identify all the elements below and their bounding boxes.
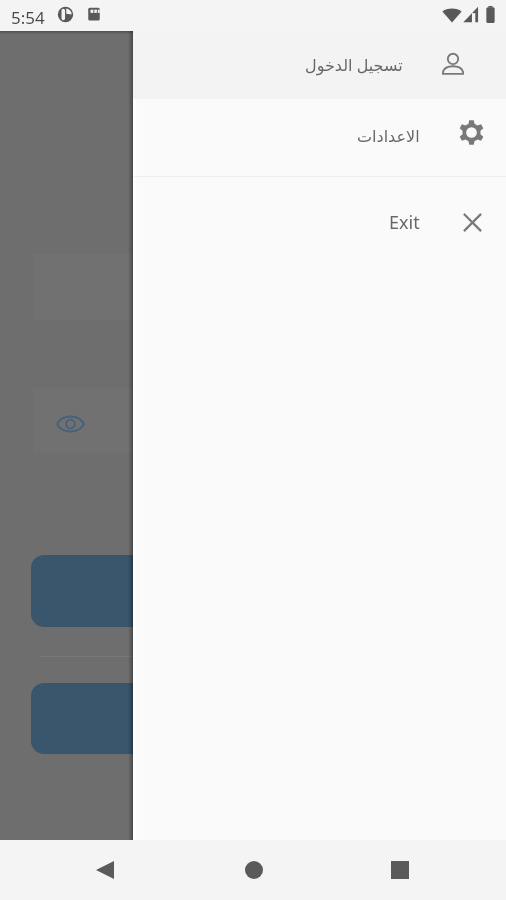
staticText: تسجيل الدخول [305, 54, 403, 76]
staticText: الاعدادات [357, 127, 420, 146]
staticText: Exit [389, 210, 420, 235]
button[interactable]: الاعدادات [133, 99, 506, 176]
button[interactable]: Exit [133, 177, 506, 267]
staticText: 5:54 [11, 6, 45, 29]
button[interactable]: تسجيل الدخول [133, 31, 506, 99]
button[interactable]: Back [81, 846, 129, 894]
button[interactable]: Recent apps [376, 846, 424, 894]
button[interactable]: Close navigation drawer [0, 31, 506, 840]
button[interactable]: Home [230, 846, 278, 894]
